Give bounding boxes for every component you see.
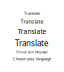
- staticText: Translate: [20, 18, 43, 25]
- staticText: Translate: [17, 27, 46, 36]
- staticText: Translate: [15, 38, 49, 48]
- staticText: Choose your language: [16, 50, 48, 54]
- staticText: Choose your language: [13, 56, 51, 61]
- staticText: Translate: [24, 11, 40, 16]
